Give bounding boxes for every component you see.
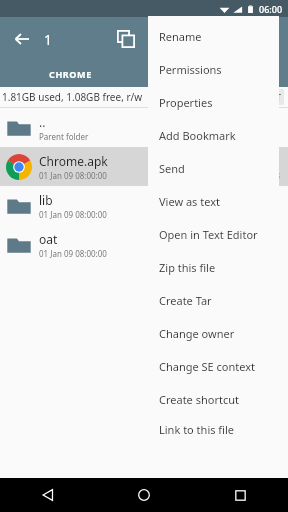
staticText: Create Tar	[159, 293, 212, 308]
button[interactable]: lib	[0, 186, 288, 225]
staticText: MOUNT	[251, 92, 281, 103]
button[interactable]: Back	[0, 478, 96, 512]
button[interactable]: oat	[0, 225, 288, 264]
staticText: 1.81GB used, 1.08GB free, r/w	[2, 90, 143, 104]
staticText: Rename	[159, 29, 202, 44]
button[interactable]: Back	[0, 17, 44, 61]
button[interactable]: Send	[148, 152, 279, 185]
staticText: Link to this file	[159, 422, 235, 437]
staticText: lib	[39, 192, 53, 208]
button[interactable]: Create Tar	[148, 284, 279, 317]
staticText: Chrome.apk	[39, 153, 108, 169]
button[interactable]: CHROME	[0, 61, 140, 87]
staticText: Change owner	[159, 326, 235, 341]
staticText: View as text	[159, 194, 220, 209]
button[interactable]: Home	[96, 478, 192, 512]
button[interactable]: Properties	[148, 86, 279, 119]
staticText: 1	[44, 30, 53, 49]
staticText: Create shortcut	[159, 392, 239, 407]
button[interactable]: Copy	[104, 17, 148, 61]
staticText: Add Bookmark	[159, 128, 236, 143]
button[interactable]: Zip this file	[148, 251, 279, 284]
button[interactable]: Recents	[192, 478, 288, 512]
staticText: CHROME	[49, 68, 92, 80]
staticText: 01 Jan 09 08:00:00	[39, 170, 107, 181]
staticText: 01 Jan 09 08:00:00	[39, 209, 107, 220]
staticText: 01 Jan 09 08:00:00	[39, 248, 107, 259]
staticText: oat	[39, 231, 58, 247]
staticText: Change SE context	[159, 359, 256, 374]
button[interactable]: MOUNT	[248, 89, 284, 105]
staticText: 06:00	[259, 3, 283, 15]
staticText: Zip this file	[159, 260, 216, 275]
button[interactable]: View as text	[148, 185, 279, 218]
staticText: Send	[159, 161, 185, 176]
staticText: Permissions	[159, 62, 222, 77]
button[interactable]: Permissions	[148, 53, 279, 86]
button[interactable]: Change owner	[148, 317, 279, 350]
button[interactable]: Change SE context	[148, 350, 279, 383]
button[interactable]: Rename	[148, 20, 279, 53]
staticText: 61.47MB	[247, 170, 280, 181]
staticText: Open in Text Editor	[159, 227, 258, 242]
button[interactable]: Create shortcut	[148, 383, 279, 416]
button[interactable]: Link to this file	[148, 416, 279, 443]
button[interactable]: Open in Text Editor	[148, 218, 279, 251]
staticText: Properties	[159, 95, 213, 110]
staticText: ..	[39, 114, 46, 130]
button[interactable]: Chrome.apk	[0, 147, 288, 186]
staticText: Parent folder	[39, 131, 89, 142]
button[interactable]: Add Bookmark	[148, 119, 279, 152]
button[interactable]: ..	[0, 108, 288, 147]
